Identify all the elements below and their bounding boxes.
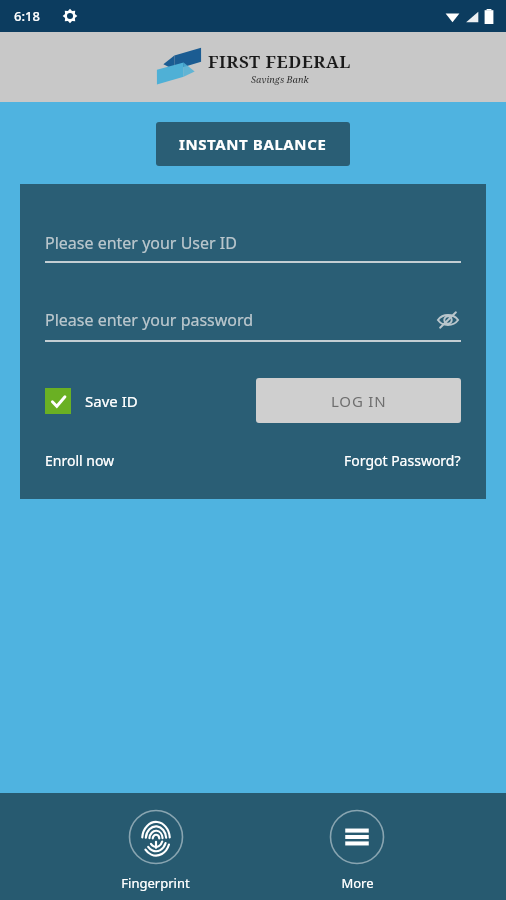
staticText: Please enter your password	[45, 309, 254, 331]
button[interactable]: Enroll now	[45, 451, 115, 470]
button[interactable]: Save ID	[45, 388, 138, 414]
staticText: Forgot Password?	[344, 451, 461, 470]
button[interactable]: Forgot Password?	[344, 451, 461, 470]
button[interactable]: INSTANT BALANCE	[156, 122, 350, 166]
staticText: Save ID	[85, 391, 138, 411]
staticText: Please enter your User ID	[45, 232, 237, 254]
staticText: Fingerprint	[121, 874, 190, 892]
button[interactable]: Please enter your User ID	[45, 232, 461, 263]
button[interactable]: Please enter your password	[45, 307, 461, 342]
staticText: 6:18	[14, 7, 40, 25]
staticText: More	[341, 874, 374, 892]
button[interactable]: Show password	[435, 307, 461, 333]
staticText: LOG IN	[331, 391, 387, 411]
staticText: Savings Bank	[251, 73, 309, 85]
staticText: FIRST FEDERAL	[208, 50, 351, 73]
staticText: INSTANT BALANCE	[179, 134, 327, 154]
button[interactable]: Fingerprint	[103, 805, 208, 896]
button[interactable]: LOG IN	[256, 378, 461, 423]
staticText: Enroll now	[45, 451, 115, 470]
button[interactable]: More	[311, 805, 403, 896]
